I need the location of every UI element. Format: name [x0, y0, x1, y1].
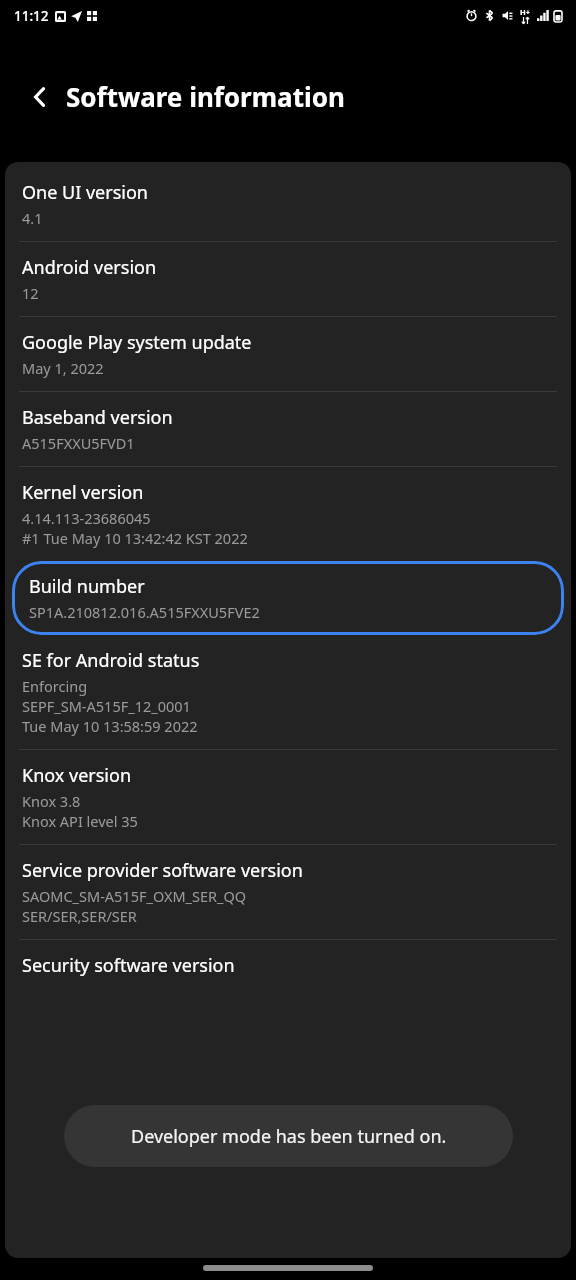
staticText: May 1, 2022	[22, 358, 104, 378]
staticText: Security software version	[22, 953, 235, 978]
staticText: SEPF_SM-A515F_12_0001	[22, 696, 191, 716]
staticText: Knox version	[22, 763, 132, 788]
staticText: Knox 3.8	[22, 791, 81, 811]
staticText: 12	[22, 283, 39, 303]
staticText: Google Play system update	[22, 330, 252, 355]
staticText: Kernel version	[22, 480, 144, 505]
button[interactable]: Android version	[5, 242, 571, 316]
button[interactable]: One UI version	[5, 167, 571, 241]
staticText: A515FXXU5FVD1	[22, 433, 135, 453]
staticText: SP1A.210812.016.A515FXXU5FVE2	[29, 602, 260, 622]
staticText: 11:12	[14, 7, 49, 25]
button[interactable]: Build number	[12, 561, 564, 635]
button[interactable]: SE for Android status	[5, 635, 571, 749]
button[interactable]: Google Play system update	[5, 317, 571, 391]
staticText: Knox API level 35	[22, 811, 138, 831]
staticText: SER/SER,SER/SER	[22, 906, 137, 926]
staticText: SAOMC_SM-A515F_OXM_SER_QQ	[22, 886, 247, 906]
staticText: Build number	[29, 574, 145, 599]
staticText: 4.14.113-23686045	[22, 508, 151, 528]
staticText: Baseband version	[22, 405, 173, 430]
staticText: H+	[520, 7, 531, 17]
button[interactable]: Security software version	[5, 940, 571, 994]
staticText: 4.1	[22, 208, 43, 228]
button[interactable]: Knox version	[5, 750, 571, 844]
button[interactable]: Baseband version	[5, 392, 571, 466]
staticText: One UI version	[22, 180, 148, 205]
staticText: Software information	[66, 79, 345, 114]
staticText: Developer mode has been turned on.	[131, 1124, 447, 1149]
button[interactable]: Service provider software version	[5, 845, 571, 939]
button[interactable]: Back	[18, 75, 62, 119]
staticText: #1 Tue May 10 13:42:42 KST 2022	[22, 528, 248, 548]
button[interactable]: Kernel version	[5, 467, 571, 561]
staticText: SE for Android status	[22, 648, 200, 673]
staticText: Tue May 10 13:58:59 2022	[22, 716, 198, 736]
staticText: Android version	[22, 255, 157, 280]
staticText: Service provider software version	[22, 858, 303, 883]
staticText: Enforcing	[22, 676, 88, 696]
